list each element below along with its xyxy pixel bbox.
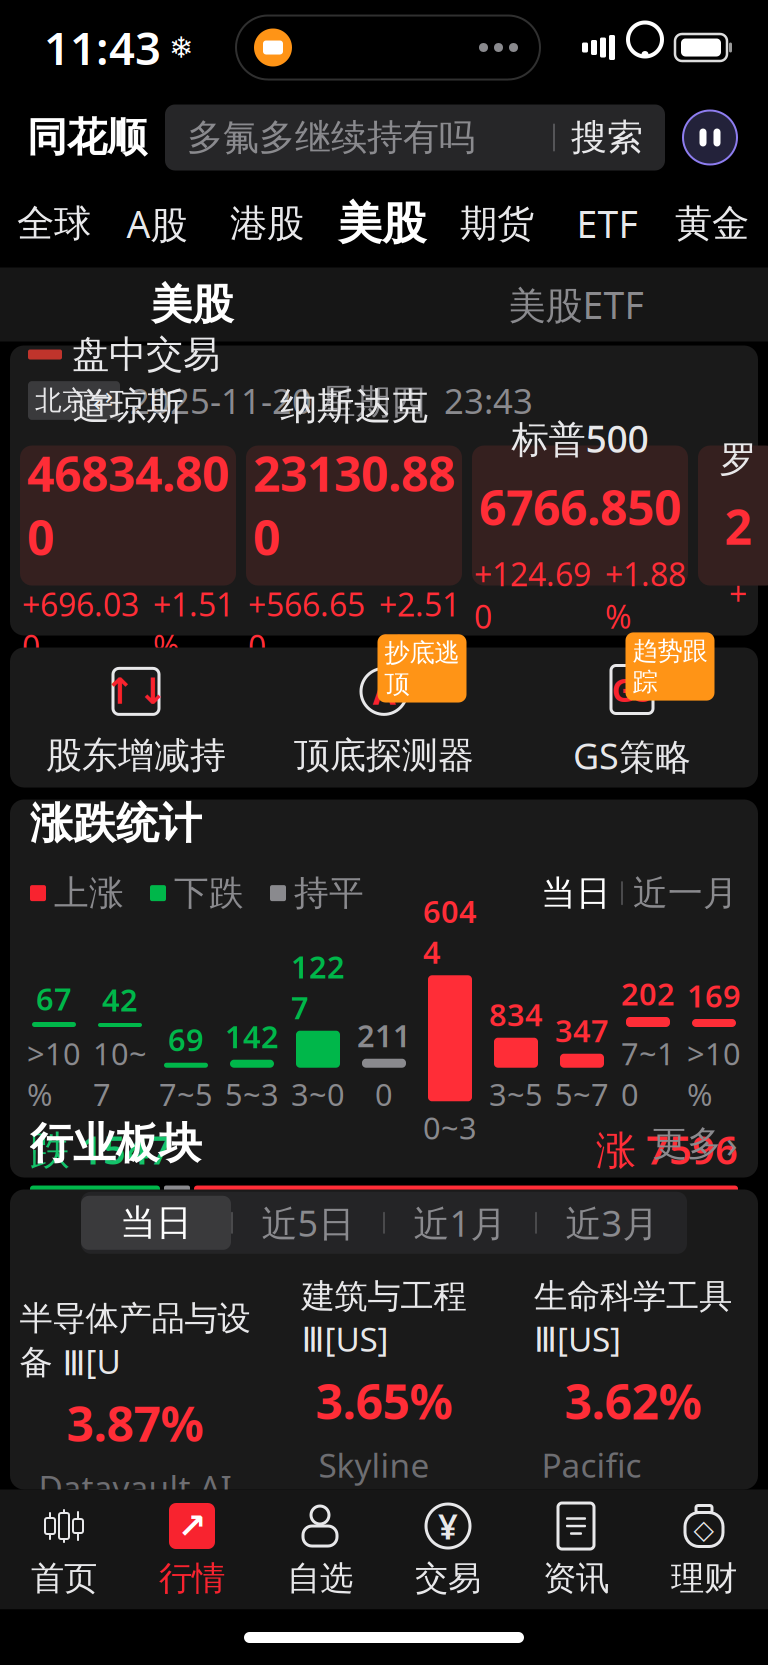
staticText: 搜索 bbox=[571, 115, 643, 160]
button[interactable]: 近1月 bbox=[385, 1196, 535, 1250]
staticText: 2 bbox=[724, 494, 751, 558]
staticText: 更多 bbox=[652, 1122, 722, 1165]
button[interactable]: Ʌ bbox=[260, 647, 508, 787]
staticText: 纳斯达克 bbox=[280, 383, 428, 429]
staticText: 趋势跟踪 bbox=[632, 635, 707, 698]
staticText: 盘中交易 bbox=[72, 332, 220, 377]
staticText: +2.51% bbox=[379, 583, 460, 668]
staticText: 行业板块 bbox=[30, 1117, 202, 1170]
staticText: Ʌ bbox=[372, 668, 395, 714]
button[interactable]: 美股 bbox=[322, 179, 442, 267]
staticText: 169 bbox=[687, 975, 741, 1016]
staticText: 当日 bbox=[541, 872, 611, 914]
staticText: 2025-11-20 星期四 23:43 bbox=[130, 377, 533, 423]
button[interactable]: 期货 bbox=[442, 179, 552, 267]
staticText: 标普500 bbox=[511, 413, 648, 463]
button[interactable]: 标普500 bbox=[472, 445, 688, 585]
staticText: 美股ETF bbox=[508, 280, 643, 329]
staticText: ↗ bbox=[177, 1506, 206, 1546]
staticText: A股 bbox=[126, 199, 187, 248]
button[interactable]: 近3月 bbox=[537, 1196, 687, 1250]
staticText: 211 bbox=[357, 1015, 411, 1056]
button[interactable]: 美股ETF bbox=[384, 267, 768, 341]
button[interactable]: 生命科学工具 Ⅲ[US] bbox=[508, 1276, 757, 1583]
staticText: 近5日 bbox=[261, 1199, 354, 1247]
button[interactable]: 更多 bbox=[652, 1119, 738, 1168]
button[interactable]: 美股 bbox=[0, 267, 384, 341]
staticText: 同花顺 bbox=[27, 113, 147, 162]
staticText: 涨跌统计 bbox=[30, 797, 202, 850]
staticText: 5~3 bbox=[225, 1074, 279, 1114]
staticText: Pacific Biosciences bbox=[541, 1443, 724, 1531]
staticText: 抄底逃顶 bbox=[384, 637, 459, 699]
button[interactable]: ↗ bbox=[128, 1489, 256, 1609]
staticText: 142 bbox=[225, 1016, 279, 1057]
staticText: 42 bbox=[102, 979, 138, 1020]
staticText: 罗 bbox=[719, 436, 756, 482]
button[interactable]: AI助手 bbox=[679, 106, 741, 168]
staticText: 黄金 bbox=[675, 201, 749, 246]
button[interactable]: ¥ bbox=[384, 1489, 512, 1609]
staticText: 6044 bbox=[423, 891, 477, 972]
staticText: ↓ bbox=[137, 671, 167, 712]
staticText: 202 bbox=[621, 973, 675, 1014]
button[interactable]: 黄金 bbox=[662, 179, 762, 267]
button[interactable]: ◇ bbox=[640, 1489, 768, 1609]
button[interactable]: 罗 bbox=[698, 445, 768, 585]
button[interactable]: 全球 bbox=[6, 179, 102, 267]
staticText: 69 bbox=[168, 1019, 204, 1060]
staticText: 全球 bbox=[17, 201, 91, 246]
staticText: 顶底探测器 bbox=[294, 733, 474, 778]
staticText: ❄ bbox=[169, 31, 194, 64]
staticText: 道琼斯 bbox=[72, 383, 183, 429]
button[interactable]: A股 bbox=[102, 179, 212, 267]
staticText: 建筑与工程 Ⅲ[US] bbox=[301, 1276, 466, 1361]
staticText: 生命科学工具 Ⅲ[US] bbox=[534, 1276, 732, 1361]
button[interactable]: 港股 bbox=[212, 179, 322, 267]
button[interactable]: ↑ bbox=[12, 647, 260, 787]
staticText: 1.855 bbox=[29, 1517, 114, 1561]
button[interactable]: 建筑与工程 Ⅲ[US] bbox=[259, 1276, 508, 1583]
staticText: 7~10 bbox=[621, 1033, 675, 1114]
staticText: 资讯 bbox=[543, 1558, 609, 1599]
button[interactable]: 道琼斯 bbox=[20, 445, 236, 585]
staticText: 北京 bbox=[35, 384, 89, 417]
staticText: 1227 bbox=[291, 946, 345, 1028]
button[interactable]: 多氟多继续持有吗 bbox=[165, 104, 665, 170]
button[interactable]: 自选 bbox=[256, 1489, 384, 1609]
button[interactable]: 资讯 bbox=[512, 1489, 640, 1609]
staticText: 多氟多继续持有吗 bbox=[187, 115, 475, 160]
staticText: 上涨 bbox=[54, 872, 124, 914]
button[interactable]: 当日 bbox=[541, 872, 611, 914]
staticText: +1.51% bbox=[153, 583, 234, 668]
button[interactable]: 近一月 bbox=[633, 872, 738, 914]
button[interactable]: 半导体产品与设备 Ⅲ[U bbox=[10, 1298, 259, 1561]
staticText: 近3月 bbox=[565, 1199, 658, 1247]
staticText: ↑ bbox=[104, 671, 134, 712]
staticText: 2.543 bbox=[278, 1539, 363, 1584]
staticText: 3.62% bbox=[564, 1369, 701, 1433]
staticText: 美股 bbox=[338, 196, 426, 250]
staticText: 交易 bbox=[415, 1558, 481, 1599]
staticText: 股东增减持 bbox=[46, 733, 226, 778]
staticText: ¥ bbox=[438, 1503, 458, 1549]
button[interactable]: 近5日 bbox=[233, 1196, 383, 1250]
button[interactable]: 当日 bbox=[81, 1196, 231, 1250]
button[interactable]: ETF bbox=[552, 179, 662, 267]
staticText: ⇄ bbox=[93, 387, 113, 414]
staticText: 3.65% bbox=[315, 1369, 452, 1433]
staticText: 6766.850 bbox=[479, 475, 681, 539]
staticText: 理财 bbox=[671, 1558, 737, 1599]
staticText: >10% bbox=[27, 1033, 81, 1114]
staticText: 5~7 bbox=[555, 1074, 609, 1114]
button[interactable]: 纳斯达克 bbox=[246, 445, 462, 585]
staticText: 7~5 bbox=[159, 1074, 213, 1114]
button[interactable]: 首页 bbox=[0, 1489, 128, 1609]
staticText: 自选 bbox=[287, 1558, 353, 1599]
staticText: >10% bbox=[687, 1033, 741, 1114]
button[interactable]: GS bbox=[508, 647, 756, 787]
staticText: 港股 bbox=[230, 201, 304, 246]
staticText: 23130.880 bbox=[253, 441, 455, 569]
staticText: +566.650 bbox=[248, 583, 365, 668]
staticText: 跌 1547 bbox=[30, 1122, 172, 1175]
